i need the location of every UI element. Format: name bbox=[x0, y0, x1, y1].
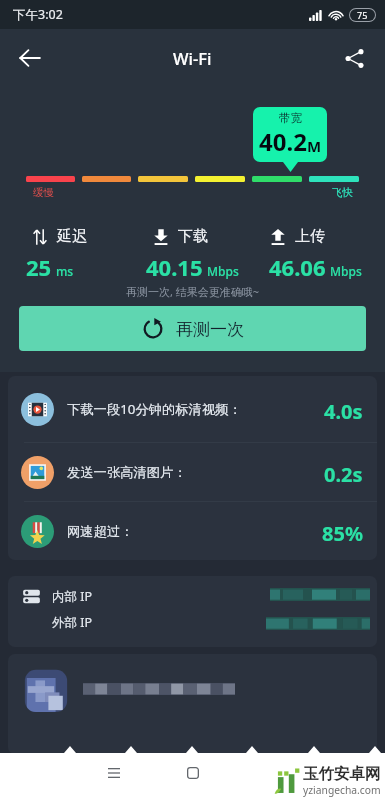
staticText: 下载 bbox=[178, 227, 208, 246]
staticText: 网速超过： bbox=[67, 523, 134, 540]
button[interactable]: 发送一张高清图片： bbox=[8, 443, 377, 501]
staticText: 发送一张高清图片： bbox=[67, 464, 187, 481]
staticText: 0.2s bbox=[324, 461, 363, 488]
staticText: 下载一段10分钟的标清视频： bbox=[67, 400, 242, 418]
staticText: 75 bbox=[357, 9, 368, 21]
staticText: 下午3:02 bbox=[13, 6, 63, 23]
staticText: 4.0s bbox=[324, 398, 363, 425]
staticText: yziangecha.com bbox=[303, 783, 381, 797]
button[interactable]: 下载一段10分钟的标清视频： bbox=[8, 376, 377, 442]
button[interactable] bbox=[8, 654, 377, 754]
button[interactable]: Share bbox=[333, 37, 375, 79]
staticText: 再测一次 bbox=[176, 319, 244, 340]
staticText: 上传 bbox=[295, 227, 325, 246]
staticText: Mbps bbox=[207, 263, 239, 279]
staticText: 40.15 bbox=[146, 252, 203, 282]
staticText: 缓慢 bbox=[33, 186, 54, 199]
staticText: 25 bbox=[26, 252, 52, 282]
button[interactable]: Recents bbox=[95, 758, 132, 788]
staticText: ms bbox=[56, 263, 74, 279]
staticText: 飞快 bbox=[332, 186, 353, 199]
staticText: Mbps bbox=[330, 263, 362, 279]
staticText: 40.2 bbox=[259, 125, 307, 158]
staticText: 再测一次, 结果会更准确哦~ bbox=[0, 284, 385, 299]
staticText: Wi-Fi bbox=[173, 47, 212, 69]
staticText: 内部 IP bbox=[52, 588, 93, 605]
staticText: 85% bbox=[322, 520, 363, 547]
staticText: 带宽 bbox=[279, 111, 302, 125]
button[interactable]: 再测一次 bbox=[19, 306, 366, 351]
button[interactable]: Home bbox=[174, 758, 211, 788]
button[interactable]: 网速超过： bbox=[8, 502, 377, 560]
staticText: 延迟 bbox=[57, 227, 87, 246]
staticText: 外部 IP bbox=[52, 614, 93, 631]
staticText: 46.06 bbox=[269, 252, 326, 282]
button[interactable]: Back bbox=[8, 36, 52, 80]
staticText: 玉竹安卓网 bbox=[303, 764, 381, 784]
staticText: M bbox=[307, 136, 322, 156]
